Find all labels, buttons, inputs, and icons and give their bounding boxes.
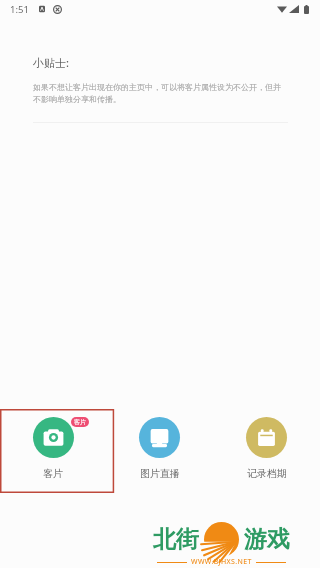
staticText: 1:51 xyxy=(10,3,29,16)
staticText: 小贴士: xyxy=(33,55,69,70)
staticText: 如果不想让客片出现在你的主页中，可以将客片属性设为不公开，但并不影响单独分享和传… xyxy=(33,82,288,104)
button[interactable]: 记录档期 xyxy=(213,409,320,493)
staticText: 图片直播 xyxy=(140,467,180,480)
staticText: WWW.BJHXS.NET xyxy=(191,557,252,567)
staticText: 游戏 xyxy=(244,525,290,554)
button[interactable]: 客片 xyxy=(0,409,106,493)
staticText: 北街 xyxy=(153,525,199,554)
staticText: 客片 xyxy=(74,418,86,426)
staticText: 客片 xyxy=(43,467,63,480)
staticText: 记录档期 xyxy=(247,467,287,480)
button[interactable]: 图片直播 xyxy=(106,409,213,493)
